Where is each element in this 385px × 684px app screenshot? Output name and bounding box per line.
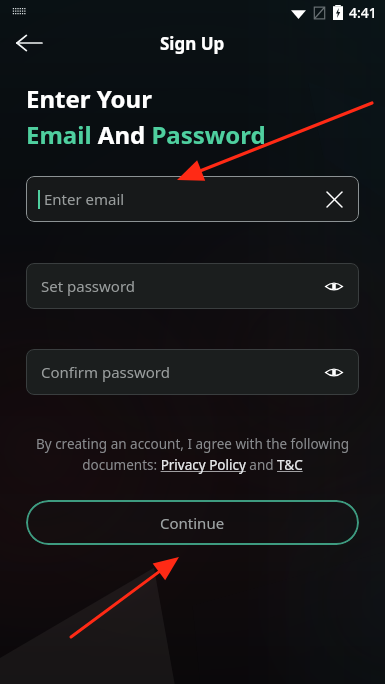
staticText: By creating an account, I agree with the… [26, 435, 359, 474]
staticText: Confirm password [41, 362, 170, 382]
button[interactable]: Show password [321, 359, 347, 385]
staticText: 4:41 [349, 3, 377, 22]
button[interactable]: Confirm password [26, 349, 359, 395]
staticText: Continue [160, 513, 225, 533]
button[interactable]: Back [8, 24, 50, 62]
staticText: Email And Password [26, 118, 266, 151]
button[interactable]: Continue [26, 500, 359, 545]
button[interactable]: Enter email [26, 176, 359, 222]
button[interactable]: Clear email [321, 186, 347, 212]
button[interactable]: Show password [321, 273, 347, 299]
staticText: Sign Up [160, 32, 225, 55]
staticText: Set password [41, 276, 136, 296]
button[interactable]: Set password [26, 263, 359, 309]
staticText: Enter Your [26, 82, 152, 115]
staticText: Enter email [44, 189, 125, 209]
